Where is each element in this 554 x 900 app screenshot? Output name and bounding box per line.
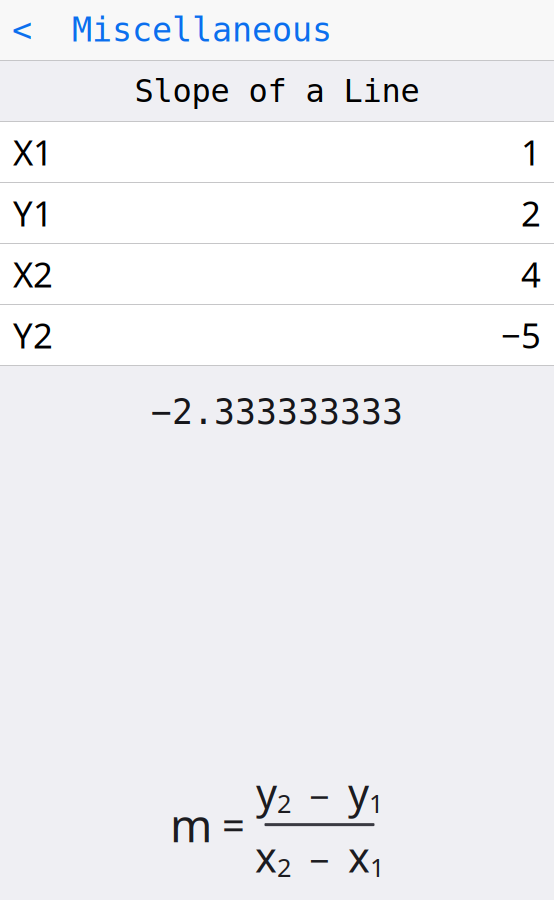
staticText: − bbox=[291, 836, 348, 884]
staticText: − bbox=[291, 772, 348, 820]
staticText: m bbox=[170, 794, 212, 855]
staticText: 1 bbox=[370, 850, 384, 884]
button[interactable]: X1 bbox=[0, 122, 554, 182]
staticText: X2 bbox=[13, 251, 53, 297]
button[interactable]: < Miscellaneous bbox=[0, 0, 554, 60]
staticText: Y1 bbox=[13, 190, 53, 236]
staticText: = bbox=[222, 798, 245, 851]
staticText: y bbox=[256, 765, 277, 820]
staticText: x bbox=[255, 829, 277, 884]
button[interactable]: Y2 bbox=[0, 305, 554, 365]
staticText: 1 bbox=[521, 129, 541, 175]
staticText: 1 bbox=[369, 786, 383, 820]
staticText: 4 bbox=[521, 251, 541, 297]
staticText: −2.333333333 bbox=[151, 392, 403, 432]
staticText: 2 bbox=[277, 786, 291, 820]
staticText: x bbox=[348, 829, 370, 884]
staticText: < Miscellaneous bbox=[12, 11, 332, 49]
staticText: Y2 bbox=[13, 312, 53, 358]
button[interactable]: X2 bbox=[0, 244, 554, 304]
staticText: 2 bbox=[521, 190, 541, 236]
staticText: 2 bbox=[277, 850, 291, 884]
staticText: −5 bbox=[501, 312, 541, 358]
staticText: Slope of a Line bbox=[134, 73, 419, 109]
button[interactable]: Y1 bbox=[0, 183, 554, 243]
staticText: y bbox=[348, 765, 369, 820]
staticText: X1 bbox=[13, 129, 53, 175]
